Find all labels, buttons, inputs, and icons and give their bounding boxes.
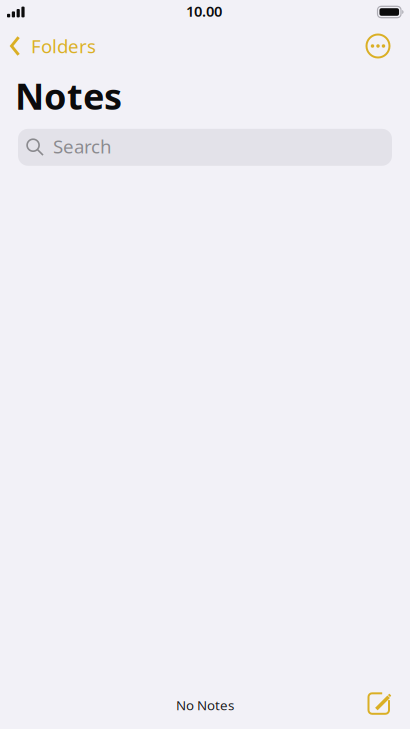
button[interactable]: More: [356, 27, 410, 65]
staticText: Folders: [31, 34, 96, 58]
staticText: 10.00: [186, 1, 222, 21]
staticText: Notes: [15, 72, 122, 120]
staticText: No Notes: [176, 696, 234, 714]
button[interactable]: Search: [18, 129, 392, 166]
button[interactable]: New Note: [357, 688, 400, 726]
button[interactable]: Folders: [0, 28, 104, 64]
staticText: Search: [53, 134, 112, 159]
